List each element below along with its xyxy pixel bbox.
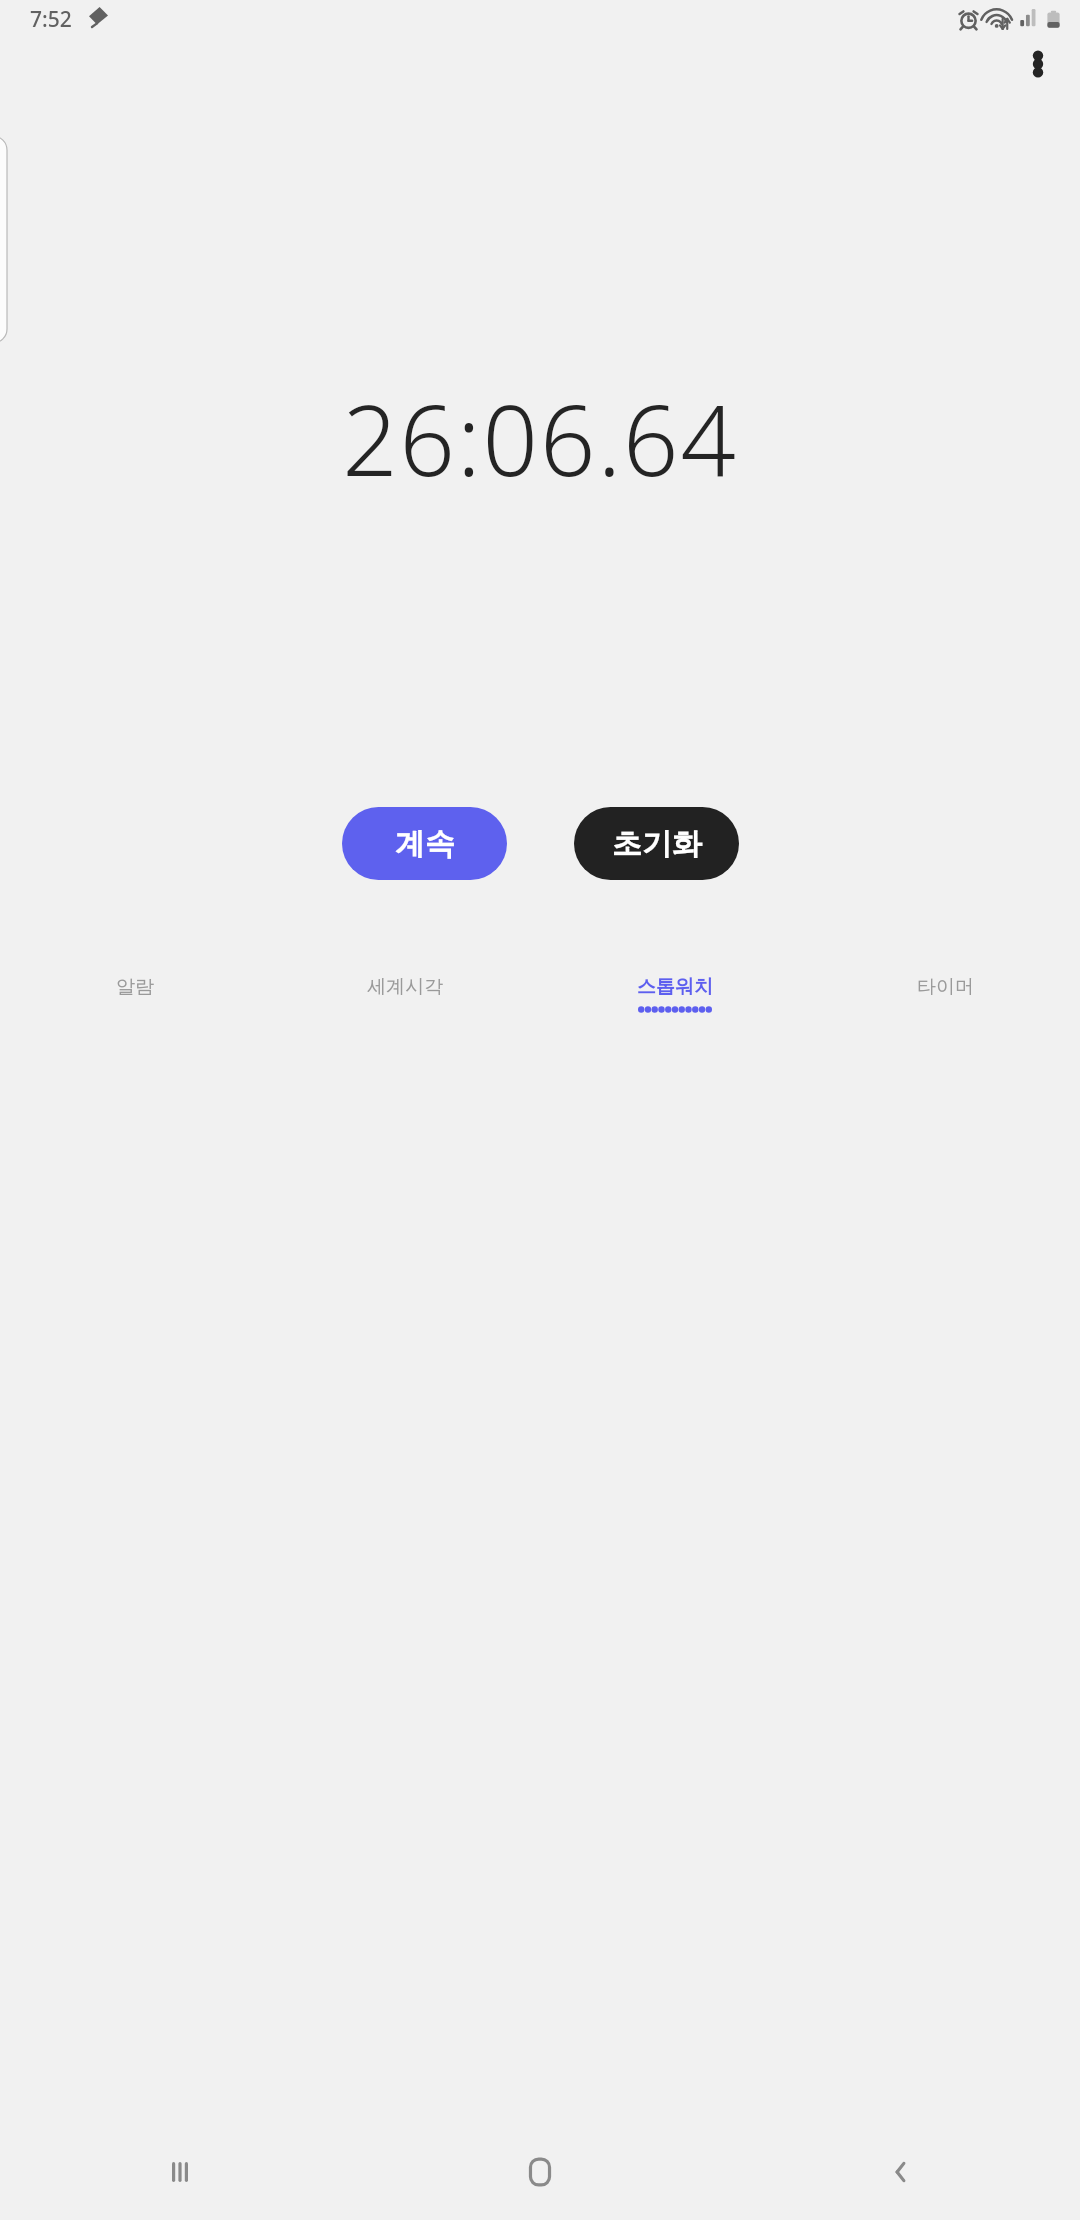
button[interactable]: 세계시각 — [270, 975, 540, 1055]
button[interactable]: 타이머 — [810, 975, 1080, 1055]
button[interactable]: 스톱워치 — [540, 975, 810, 1055]
button[interactable]: 초기화 — [574, 807, 739, 880]
staticText: 계속 — [395, 825, 455, 863]
button[interactable]: More options — [1010, 36, 1066, 92]
staticText: 알람 — [116, 975, 154, 999]
staticText: 스톱워치 — [637, 975, 713, 999]
staticText: 7:52 — [30, 5, 72, 34]
staticText: 초기화 — [612, 825, 702, 863]
staticText: 타이머 — [917, 975, 974, 999]
button[interactable]: Recent apps — [0, 2124, 360, 2220]
button[interactable]: Home — [360, 2124, 720, 2220]
staticText: 26:06.64 — [342, 372, 738, 482]
button[interactable]: 계속 — [342, 807, 507, 880]
button[interactable]: 알람 — [0, 975, 270, 1055]
button[interactable]: Back — [720, 2124, 1080, 2220]
staticText: 세계시각 — [367, 975, 443, 999]
